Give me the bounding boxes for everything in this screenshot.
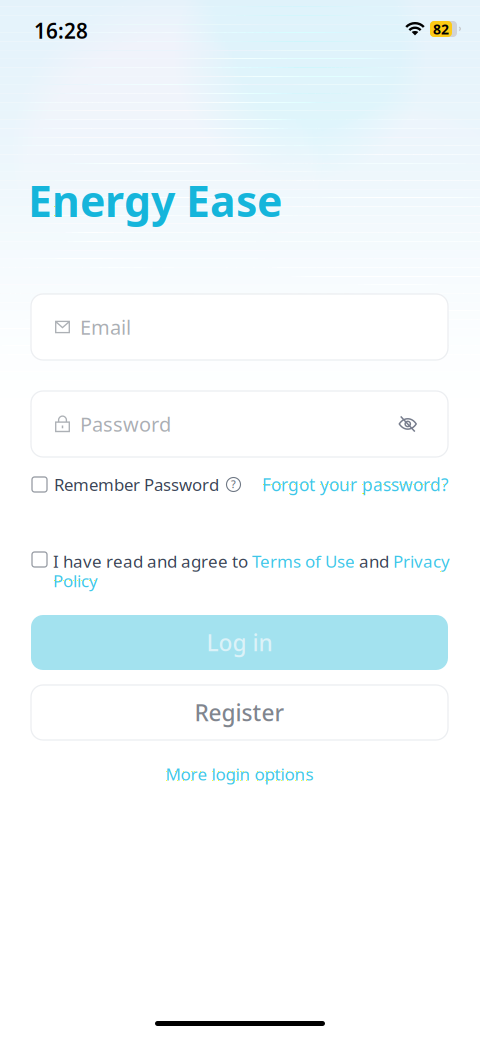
button[interactable]: Terms of Use: [252, 550, 355, 572]
staticText: Privacy: [393, 550, 450, 572]
staticText: Register: [194, 697, 284, 727]
button[interactable]: Remember Password: [32, 473, 241, 496]
staticText: Policy: [53, 569, 98, 592]
staticText: Password: [80, 411, 171, 437]
button[interactable]: More login options: [31, 763, 448, 785]
staticText: 16:28: [34, 17, 88, 44]
button[interactable]: Log in: [31, 615, 448, 670]
staticText: Energy Ease: [28, 172, 282, 229]
staticText: Terms of Use: [252, 550, 355, 572]
staticText: Remember Password: [54, 473, 219, 496]
button[interactable]: Register: [31, 685, 448, 740]
staticText: and: [355, 550, 393, 572]
staticText: Log in: [206, 627, 272, 657]
staticText: Email: [80, 314, 131, 340]
staticText: Forgot your password?: [262, 473, 449, 496]
staticText: I have read and agree to: [53, 550, 252, 572]
button[interactable]: Policy: [53, 569, 98, 592]
staticText: 82: [433, 20, 449, 38]
staticText: More login options: [165, 763, 313, 785]
button[interactable]: [32, 552, 47, 567]
button[interactable]: Forgot your password?: [262, 473, 449, 496]
staticText: ?: [231, 477, 236, 491]
